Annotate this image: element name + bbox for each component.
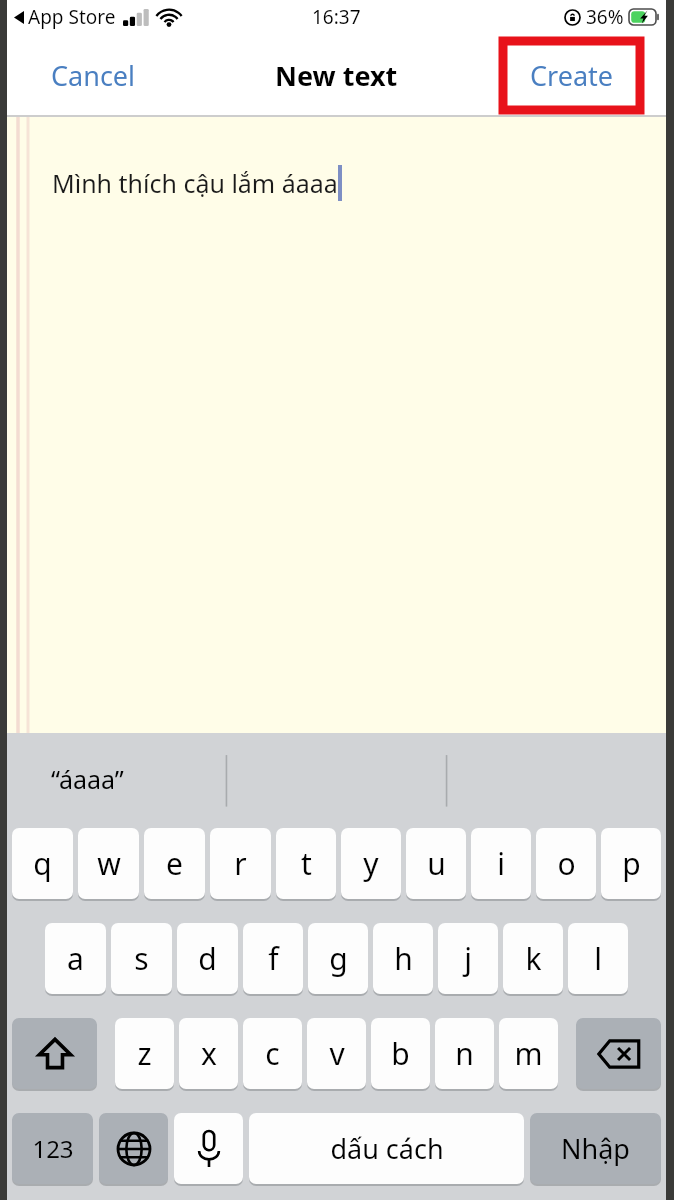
staticText: App Store — [28, 4, 116, 30]
staticText: u — [427, 843, 446, 884]
staticText: y — [363, 843, 379, 884]
button[interactable]: d — [177, 923, 238, 996]
button[interactable]: Dictation — [174, 1113, 243, 1186]
button[interactable]: w — [78, 828, 139, 901]
staticText: i — [497, 843, 505, 884]
staticText: o — [557, 843, 576, 884]
button[interactable]: p — [601, 828, 661, 901]
button[interactable]: Backspace — [576, 1018, 661, 1091]
button[interactable]: dấu cách — [249, 1113, 524, 1186]
button[interactable]: s — [111, 923, 172, 996]
staticText: k — [525, 938, 542, 979]
staticText: Create — [530, 57, 614, 94]
button[interactable]: c — [243, 1018, 302, 1091]
staticText: b — [391, 1033, 410, 1074]
button[interactable]: e — [144, 828, 205, 901]
button[interactable]: q — [12, 828, 73, 901]
staticText: r — [234, 843, 247, 884]
staticText: m — [514, 1033, 543, 1074]
staticText: g — [329, 938, 348, 979]
button[interactable]: Nhập — [530, 1113, 661, 1186]
button[interactable]: Change keyboard — [99, 1113, 168, 1186]
staticText: v — [329, 1033, 345, 1074]
button[interactable]: Create — [503, 41, 640, 110]
button[interactable]: t — [276, 828, 336, 901]
staticText: h — [394, 938, 413, 979]
staticText: f — [268, 938, 279, 979]
staticText: a — [67, 938, 84, 979]
button[interactable]: Shift — [12, 1018, 97, 1091]
button[interactable]: h — [373, 923, 433, 996]
button[interactable]: m — [499, 1018, 558, 1091]
staticText: New text — [275, 57, 398, 94]
button[interactable]: Cancel — [37, 47, 150, 104]
staticText: s — [134, 938, 149, 979]
staticText: d — [198, 938, 217, 979]
staticText: t — [301, 843, 312, 884]
staticText: 16:37 — [312, 4, 361, 30]
button[interactable]: l — [568, 923, 628, 996]
staticText: Cancel — [51, 57, 136, 94]
staticText: q — [33, 843, 52, 884]
button[interactable]: z — [115, 1018, 174, 1091]
button[interactable]: “áaaa” — [37, 754, 138, 804]
staticText: dấu cách — [330, 1130, 444, 1167]
button[interactable]: x — [179, 1018, 238, 1091]
staticText: z — [137, 1033, 152, 1074]
button[interactable]: j — [438, 923, 498, 996]
staticText: 36% — [586, 4, 624, 30]
button[interactable]: f — [243, 923, 303, 996]
button[interactable]: u — [406, 828, 466, 901]
staticText: n — [455, 1033, 474, 1074]
button[interactable]: i — [471, 828, 531, 901]
button[interactable]: r — [210, 828, 271, 901]
button[interactable]: Mình thích cậu lắm áaaa — [7, 117, 666, 733]
button[interactable]: b — [371, 1018, 430, 1091]
button[interactable]: n — [435, 1018, 494, 1091]
staticText: 123 — [32, 1132, 74, 1165]
staticText: x — [201, 1033, 217, 1074]
button[interactable]: y — [341, 828, 401, 901]
staticText: e — [166, 843, 183, 884]
button[interactable]: g — [308, 923, 368, 996]
staticText: p — [622, 843, 641, 884]
button[interactable]: v — [307, 1018, 366, 1091]
button[interactable]: k — [503, 923, 563, 996]
staticText: l — [594, 938, 602, 979]
staticText: Nhập — [561, 1130, 630, 1167]
staticText: j — [464, 938, 472, 979]
button[interactable]: o — [536, 828, 596, 901]
staticText: “áaaa” — [51, 762, 124, 796]
staticText: Mình thích cậu lắm áaaa — [52, 166, 338, 200]
staticText: c — [265, 1033, 280, 1074]
button[interactable]: a — [45, 923, 106, 996]
staticText: w — [97, 843, 121, 884]
button[interactable]: 123 — [12, 1113, 93, 1186]
